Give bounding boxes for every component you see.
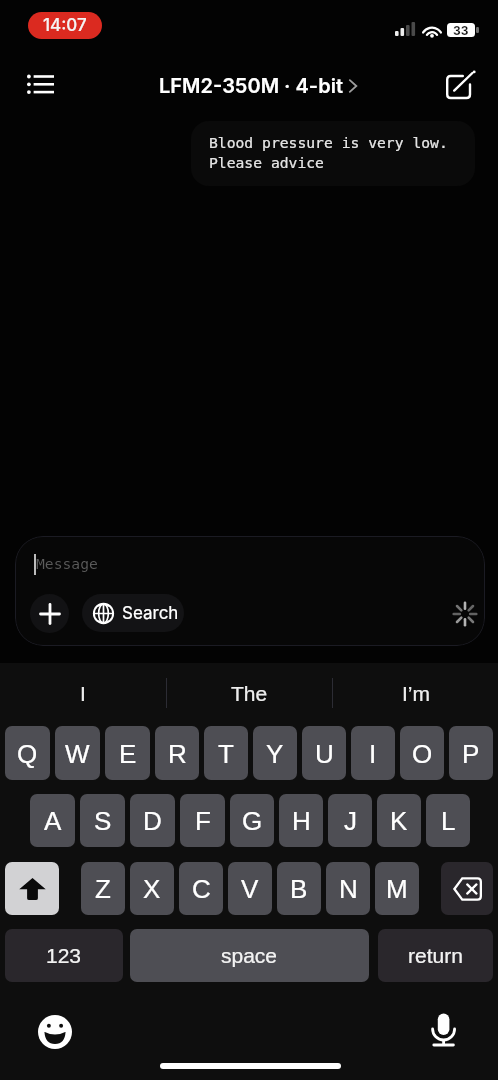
staticText: I bbox=[80, 682, 86, 705]
button[interactable]: 123 bbox=[5, 929, 123, 982]
button[interactable]: I’m bbox=[333, 663, 498, 723]
button[interactable]: A bbox=[30, 794, 75, 847]
button[interactable]: V bbox=[228, 862, 272, 915]
staticText: X bbox=[143, 874, 161, 903]
staticText: H bbox=[292, 806, 311, 835]
button[interactable]: Z bbox=[81, 862, 125, 915]
button[interactable]: Add attachment bbox=[30, 594, 69, 633]
staticText: E bbox=[119, 739, 137, 768]
button[interactable]: New chat bbox=[440, 65, 482, 107]
staticText: U bbox=[315, 739, 334, 768]
staticText: C bbox=[192, 874, 211, 903]
staticText: N bbox=[339, 874, 358, 903]
button[interactable]: U bbox=[302, 726, 346, 780]
staticText: I bbox=[369, 739, 377, 768]
staticText: O bbox=[412, 739, 433, 768]
button[interactable]: R bbox=[155, 726, 199, 780]
staticText: W bbox=[65, 739, 90, 768]
button[interactable]: K bbox=[377, 794, 421, 847]
staticText: Q bbox=[17, 739, 38, 768]
button[interactable]: Backspace bbox=[441, 862, 493, 915]
button[interactable]: W bbox=[55, 726, 100, 780]
staticText: S bbox=[94, 806, 112, 835]
button[interactable]: Search bbox=[82, 594, 184, 632]
staticText: F bbox=[195, 806, 211, 835]
staticText: Blood pressure is very low. Please advic… bbox=[209, 134, 448, 171]
staticText: Y bbox=[266, 739, 284, 768]
button[interactable]: I bbox=[351, 726, 395, 780]
staticText: Z bbox=[95, 874, 111, 903]
button[interactable]: T bbox=[204, 726, 248, 780]
button[interactable]: return bbox=[378, 929, 493, 982]
button[interactable]: Q bbox=[5, 726, 50, 780]
button[interactable]: I bbox=[0, 663, 166, 723]
button[interactable]: P bbox=[449, 726, 493, 780]
staticText: D bbox=[143, 806, 162, 835]
button[interactable]: Conversations bbox=[18, 62, 62, 106]
button[interactable]: G bbox=[230, 794, 274, 847]
button[interactable]: S bbox=[80, 794, 125, 847]
button[interactable]: Shift bbox=[5, 862, 59, 915]
staticText: T bbox=[218, 739, 234, 768]
staticText: 14:07 bbox=[43, 15, 87, 36]
button[interactable]: Emoji bbox=[37, 1014, 72, 1049]
button[interactable]: Y bbox=[253, 726, 297, 780]
staticText: K bbox=[390, 806, 408, 835]
button[interactable]: Stop generating bbox=[445, 594, 484, 633]
button[interactable]: F bbox=[180, 794, 225, 847]
staticText: The bbox=[231, 682, 268, 705]
staticText: L bbox=[441, 806, 456, 835]
button[interactable]: The bbox=[167, 663, 332, 723]
staticText: 123 bbox=[46, 944, 82, 967]
button[interactable]: Dictation bbox=[427, 1008, 462, 1043]
button[interactable]: D bbox=[130, 794, 175, 847]
staticText: space bbox=[221, 944, 278, 967]
staticText: G bbox=[242, 806, 263, 835]
button[interactable]: M bbox=[375, 862, 419, 915]
button[interactable]: O bbox=[400, 726, 444, 780]
staticText: M bbox=[386, 874, 408, 903]
staticText: 33 bbox=[453, 23, 469, 37]
staticText: R bbox=[168, 739, 187, 768]
staticText: P bbox=[462, 739, 480, 768]
staticText: J bbox=[344, 806, 357, 835]
staticText: B bbox=[290, 874, 308, 903]
button[interactable]: E bbox=[105, 726, 150, 780]
staticText: I’m bbox=[402, 682, 430, 705]
staticText: A bbox=[44, 806, 62, 835]
button[interactable]: X bbox=[130, 862, 174, 915]
staticText: Search bbox=[122, 603, 179, 624]
button[interactable]: N bbox=[326, 862, 370, 915]
button[interactable]: LFM2-350M · 4-bit bbox=[150, 70, 365, 102]
staticText: return bbox=[408, 944, 463, 967]
staticText: LFM2-350M · 4-bit bbox=[159, 74, 343, 98]
staticText: V bbox=[241, 874, 259, 903]
button[interactable]: B bbox=[277, 862, 321, 915]
button[interactable]: L bbox=[426, 794, 470, 847]
button[interactable]: space bbox=[130, 929, 369, 982]
button[interactable]: J bbox=[328, 794, 372, 847]
button[interactable]: H bbox=[279, 794, 323, 847]
staticText: Message bbox=[36, 555, 98, 572]
button[interactable]: C bbox=[179, 862, 223, 915]
